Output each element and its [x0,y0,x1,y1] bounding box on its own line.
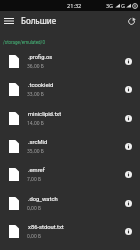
staticText: .tcookieid [28,82,54,89]
button[interactable]: File info [125,86,132,93]
staticText: 0,00 Б [27,205,41,212]
button[interactable]: Open navigation menu [0,10,18,31]
staticText: 7,00 Б [27,176,41,183]
button[interactable]: File info [125,228,132,235]
button[interactable]: File info [125,200,132,207]
button[interactable]: .srcMid [0,132,140,160]
staticText: .dog_watch [28,196,58,203]
staticText: 14,00 Б [27,120,44,127]
button[interactable]: Refresh [123,11,140,32]
button[interactable]: File info [125,58,132,65]
staticText: 0,00 Б [27,233,41,240]
staticText: .emref [28,167,45,174]
staticText: /storage/emulated/0 [3,40,45,45]
button[interactable]: .emref [0,160,140,188]
staticText: 21:32 [67,2,82,10]
button[interactable]: x86-stdout.txt [0,217,140,245]
button[interactable]: File info [125,143,132,150]
button[interactable]: File info [125,115,132,122]
button[interactable]: .dog_watch [0,189,140,217]
staticText: x86-stdout.txt [28,224,64,231]
button[interactable]: .profig.os [0,47,140,75]
staticText: 35,00 Б [27,148,44,155]
staticText: 36,00 Б [27,63,44,70]
staticText: miniclipid.txt [28,111,62,118]
staticText: .srcMid [28,139,48,146]
button[interactable]: File info [125,171,132,178]
staticText: 33,00 Б [27,91,44,98]
button[interactable]: .tcookieid [0,75,140,103]
staticText: 3G [106,2,114,9]
staticText: Большие [21,15,57,26]
staticText: G [121,2,125,9]
button[interactable]: miniclipid.txt [0,104,140,132]
staticText: .profig.os [28,54,53,61]
